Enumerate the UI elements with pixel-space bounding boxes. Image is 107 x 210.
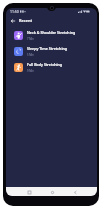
button[interactable]: Home [49, 189, 56, 196]
staticText: 7 Min [27, 37, 34, 41]
staticText: Sleepy Time Stretching [27, 46, 67, 51]
button[interactable]: Back [72, 189, 79, 196]
button[interactable]: Recent apps [26, 189, 33, 196]
staticText: Neck & Shoulder Stretching [27, 30, 76, 35]
staticText: 11:50 [10, 9, 19, 14]
button[interactable]: Sleepy Time Stretching [6, 43, 97, 59]
button[interactable]: Full Body Stretching [6, 59, 97, 75]
button[interactable]: Back [8, 16, 17, 25]
staticText: Full Body Stretching [27, 62, 63, 67]
button[interactable]: Neck & Shoulder Stretching [6, 27, 97, 43]
staticText: Recent [19, 18, 33, 23]
staticText: 5 Min [27, 53, 34, 57]
staticText: 9 Min [27, 69, 34, 73]
